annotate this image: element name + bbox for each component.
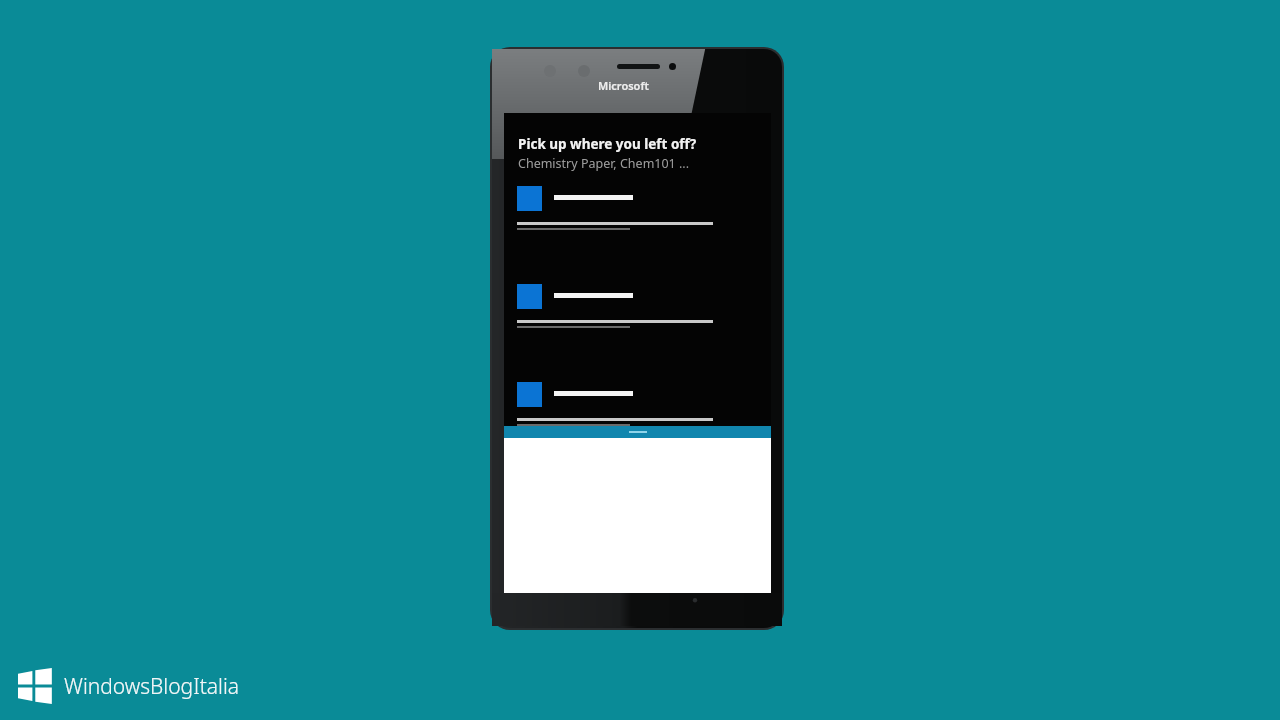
button[interactable]: Recent document	[504, 186, 771, 228]
staticText: Pick up where you left off?	[518, 135, 697, 153]
staticText: Chemistry Paper, Chem101 ...	[518, 155, 690, 172]
staticText: WindowsBlogItalia	[64, 672, 240, 701]
button[interactable]: Recent document	[504, 382, 771, 424]
staticText: Microsoft	[598, 78, 649, 93]
button[interactable]: Expand panel	[504, 426, 771, 438]
button[interactable]: Recent document	[504, 284, 771, 326]
